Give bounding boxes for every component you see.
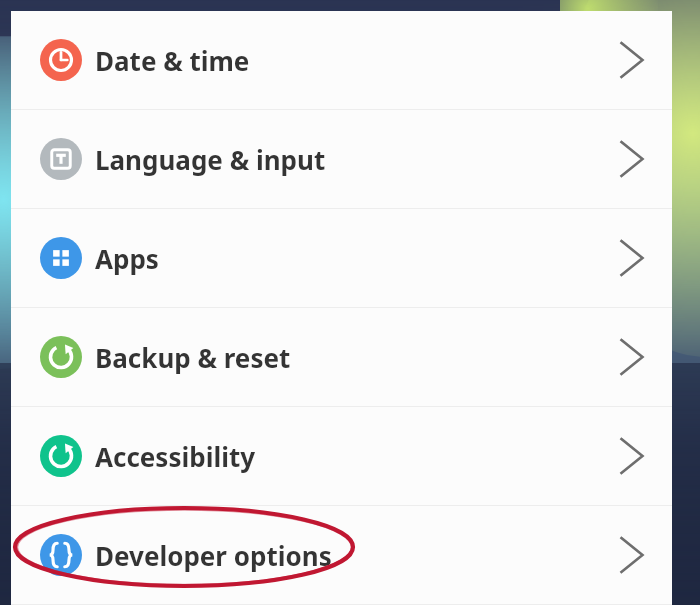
staticText: Date & time (95, 43, 250, 78)
staticText: Apps (95, 241, 159, 276)
button[interactable]: Accessibility (11, 407, 672, 505)
button[interactable]: Date & time (11, 11, 672, 109)
button[interactable]: Backup & reset (11, 308, 672, 406)
staticText: Accessibility (95, 439, 256, 474)
other: Open Language & input (620, 139, 648, 179)
staticText: Developer options (95, 538, 332, 573)
other: Open Developer options (620, 535, 648, 575)
staticText: Language & input (95, 142, 326, 177)
button[interactable]: Apps (11, 209, 672, 307)
other: Open Apps (620, 238, 648, 278)
button[interactable]: Language & input (11, 110, 672, 208)
other: Open Backup & reset (620, 337, 648, 377)
staticText: Backup & reset (95, 340, 291, 375)
button[interactable]: Developer options (11, 506, 672, 604)
other: Open Date & time (620, 40, 648, 80)
other: Open Accessibility (620, 436, 648, 476)
